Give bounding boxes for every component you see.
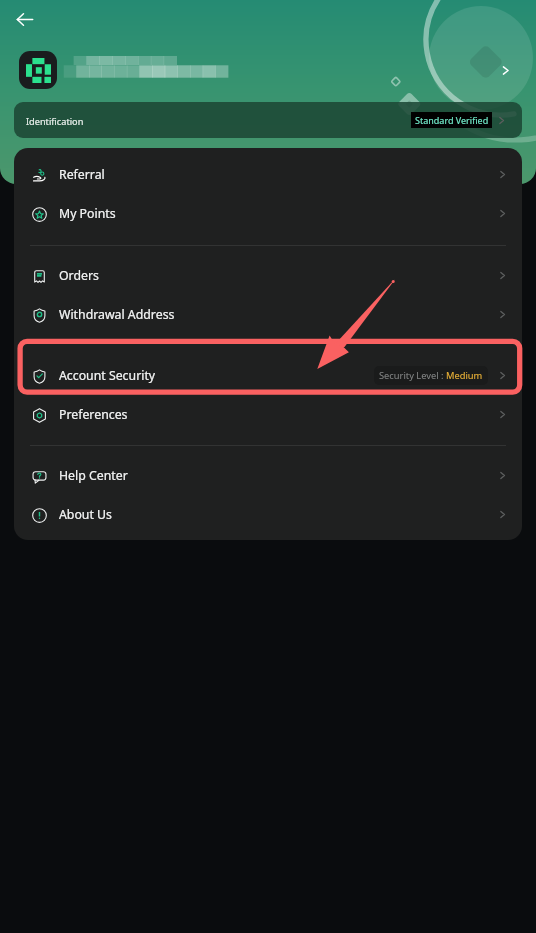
button[interactable]: My Points	[14, 194, 522, 233]
staticText: Identification	[26, 115, 84, 128]
button[interactable]: Orders	[14, 256, 522, 295]
button[interactable]: Referral	[14, 155, 522, 194]
button[interactable]: Account Security	[14, 356, 522, 395]
staticText: About Us	[59, 506, 112, 523]
staticText: My Points	[59, 205, 116, 222]
staticText: Security Level :	[379, 369, 446, 382]
button[interactable]: Profile details	[492, 57, 518, 83]
staticText: Account Security	[59, 367, 156, 384]
staticText: Medium	[446, 369, 483, 382]
staticText: Preferences	[59, 406, 128, 423]
staticText: Standard Verified	[415, 114, 489, 126]
staticText: Withdrawal Address	[59, 306, 175, 323]
button[interactable]: Identification	[14, 102, 522, 138]
staticText: Orders	[59, 267, 99, 284]
staticText: Help Center	[59, 467, 128, 484]
button[interactable]: Preferences	[14, 395, 522, 434]
staticText: Referral	[59, 166, 105, 183]
button[interactable]: Back	[8, 3, 40, 35]
button[interactable]: About Us	[14, 495, 522, 534]
button[interactable]: Withdrawal Address	[14, 295, 522, 334]
button[interactable]: Help Center	[14, 456, 522, 495]
